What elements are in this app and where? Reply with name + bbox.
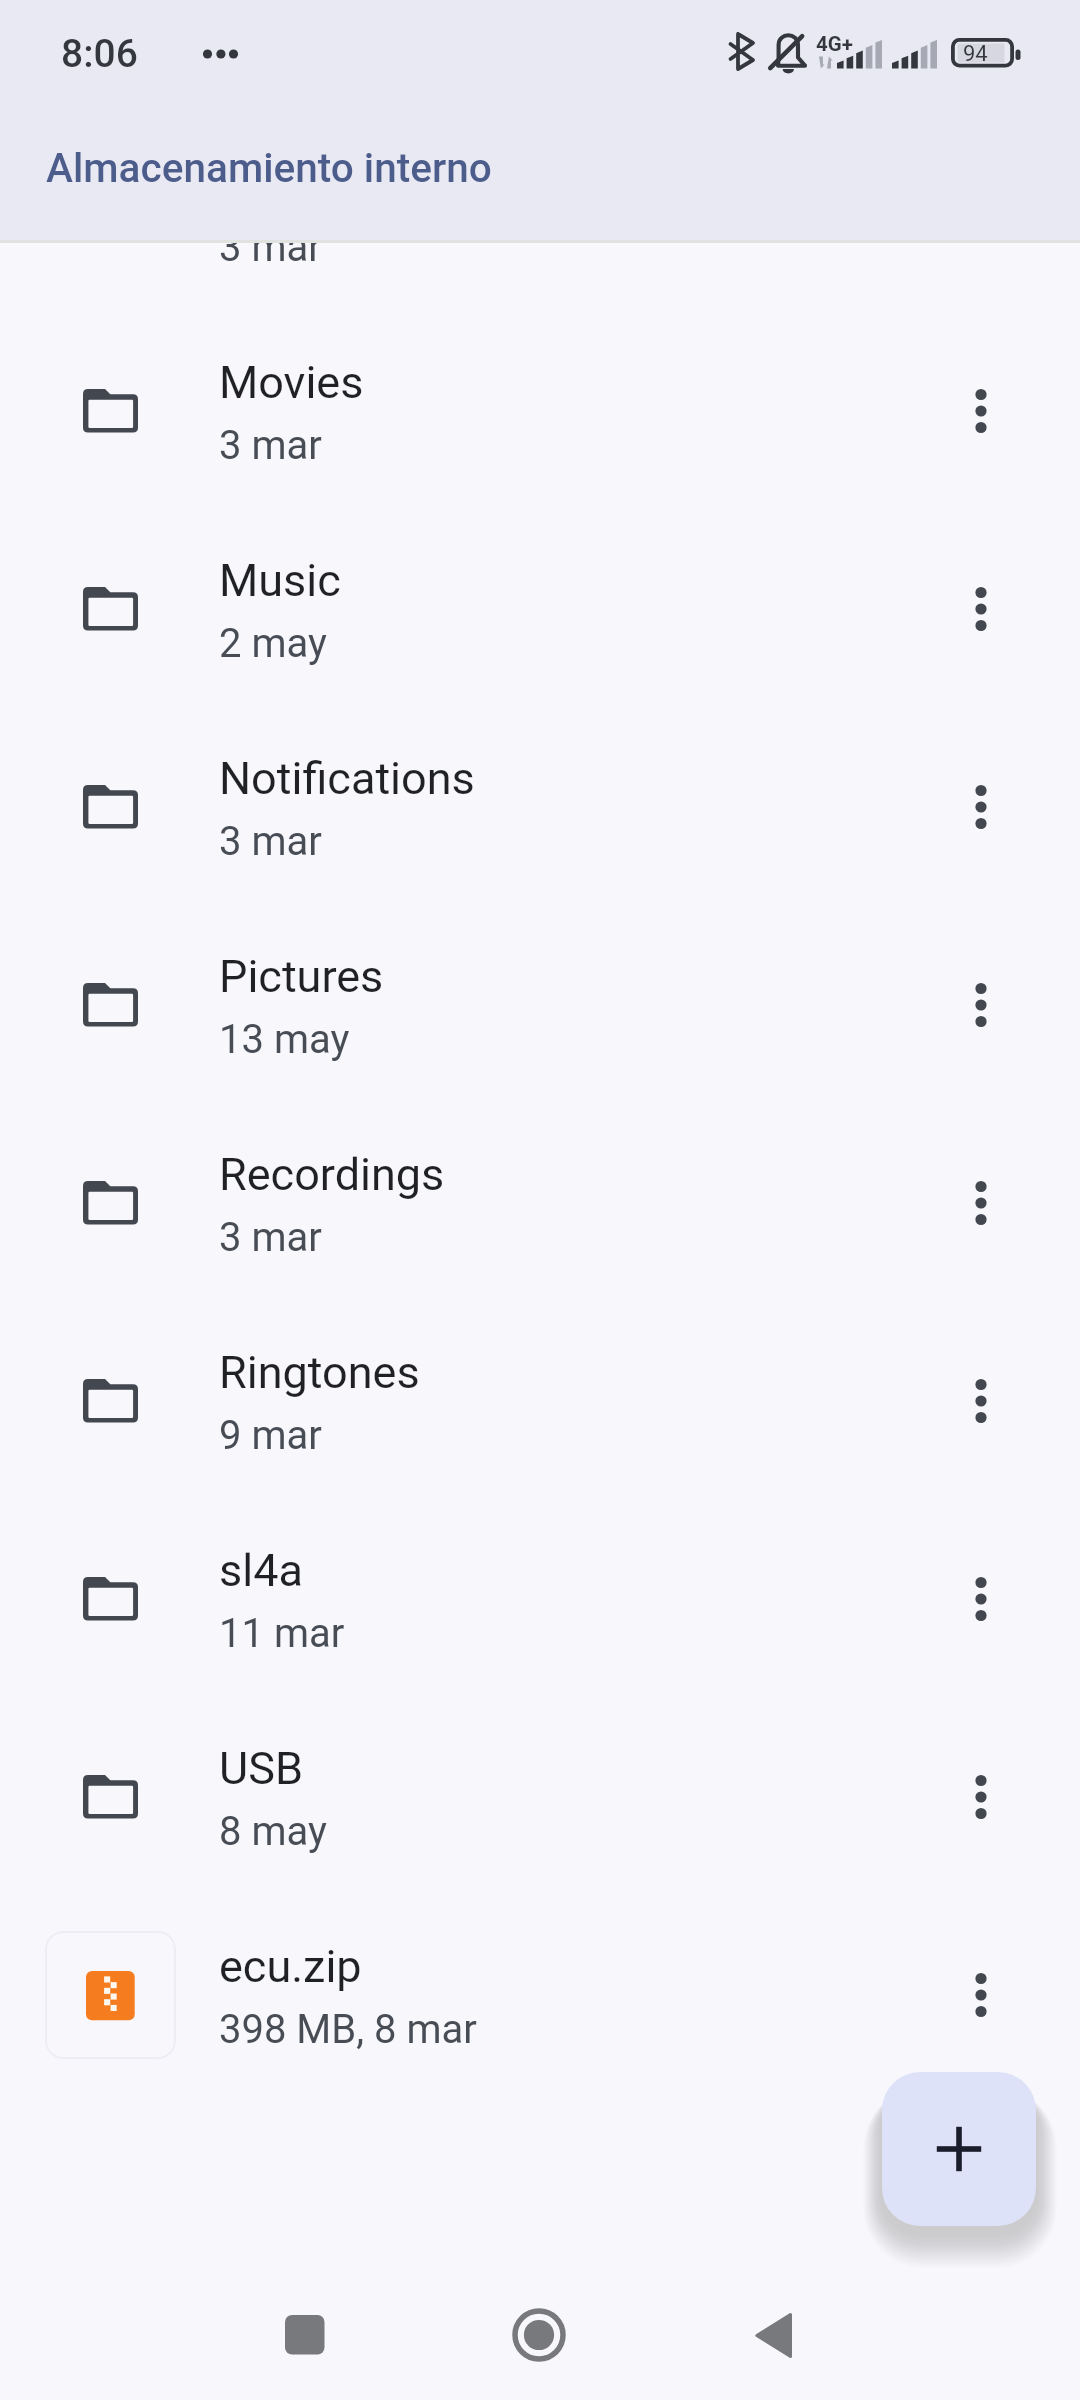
button[interactable]: More options for USB xyxy=(925,1698,1080,1896)
button[interactable]: More options for sl4a xyxy=(925,1500,1080,1698)
button[interactable]: Movies xyxy=(0,312,1080,510)
button[interactable]: More options for Download xyxy=(925,114,1080,312)
staticText: 8:06 xyxy=(61,31,138,77)
button[interactable]: Music xyxy=(0,510,1080,708)
staticText: 3 mar xyxy=(219,1214,322,1261)
staticText: 11 mar xyxy=(219,1610,345,1657)
staticText: Download xyxy=(219,158,420,211)
button[interactable]: USB xyxy=(0,1698,1080,1896)
staticText: 2 may xyxy=(219,620,327,667)
staticText: Recordings xyxy=(219,1148,445,1201)
staticText: 9 mar xyxy=(219,1412,322,1459)
button[interactable]: Recent apps xyxy=(269,2299,341,2371)
staticText: ecu.zip xyxy=(219,1940,362,1993)
button[interactable]: Notifications xyxy=(0,708,1080,906)
staticText: 4G+ xyxy=(816,32,853,56)
button[interactable]: ecu.zip xyxy=(0,1896,1080,2094)
staticText: sl4a xyxy=(219,1544,303,1597)
button[interactable]: sl4a xyxy=(0,1500,1080,1698)
button[interactable]: Download xyxy=(0,114,1080,312)
button[interactable]: More options for Ringtones xyxy=(925,1302,1080,1500)
staticText: 13 may xyxy=(219,1016,350,1063)
staticText: 3 mar xyxy=(219,224,322,271)
staticText: Movies xyxy=(219,356,364,409)
button[interactable]: Add xyxy=(882,2072,1036,2226)
staticText: 3 mar xyxy=(219,818,322,865)
staticText: Almacenamiento interno xyxy=(46,144,492,191)
staticText: Notifications xyxy=(219,752,475,805)
button[interactable]: Recordings xyxy=(0,1104,1080,1302)
button[interactable]: Home xyxy=(503,2299,575,2371)
button[interactable]: More options for ecu.zip xyxy=(925,1896,1080,2094)
button[interactable]: More options for Recordings xyxy=(925,1104,1080,1302)
staticText: 3 mar xyxy=(219,422,322,469)
button[interactable]: More options for Music xyxy=(925,510,1080,708)
staticText: 8 may xyxy=(219,1808,327,1855)
button[interactable]: Ringtones xyxy=(0,1302,1080,1500)
button[interactable]: More options for Movies xyxy=(925,312,1080,510)
button[interactable]: More options for Notifications xyxy=(925,708,1080,906)
button[interactable]: Back xyxy=(737,2299,809,2371)
staticText: Pictures xyxy=(219,950,384,1003)
button[interactable]: More options for Pictures xyxy=(925,906,1080,1104)
staticText: Music xyxy=(219,554,341,607)
staticText: Ringtones xyxy=(219,1346,420,1399)
staticText: 94 xyxy=(963,41,988,67)
staticText: USB xyxy=(219,1742,303,1795)
staticText: 398 MB, 8 mar xyxy=(219,2006,477,2053)
button[interactable]: Pictures xyxy=(0,906,1080,1104)
